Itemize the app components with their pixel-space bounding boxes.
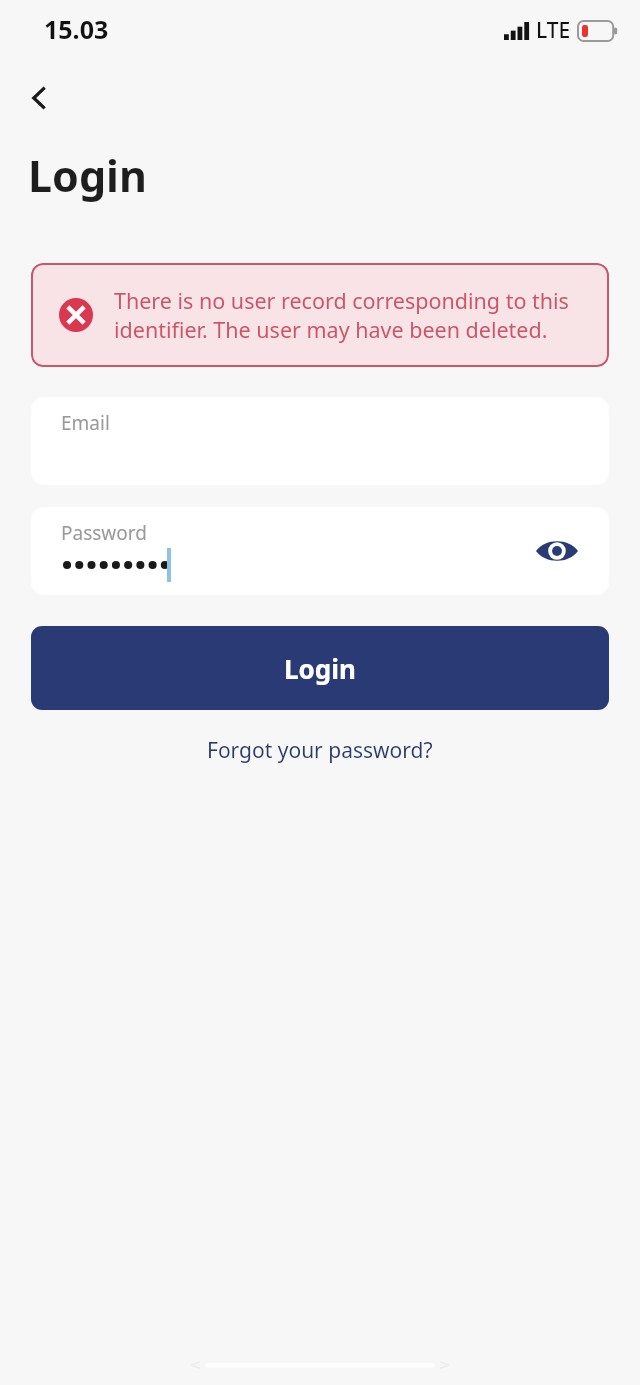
staticText: There is no user record corresponding to… — [114, 286, 591, 344]
button[interactable]: Login — [31, 626, 609, 710]
staticText: Forgot your password? — [207, 736, 433, 765]
button[interactable]: Forgot your password? — [197, 730, 443, 771]
staticText: 15.03 — [44, 12, 109, 46]
button[interactable]: Password — [31, 507, 609, 595]
button[interactable]: There is no user record corresponding to… — [31, 263, 609, 367]
staticText: Login — [28, 146, 147, 205]
button[interactable]: Email — [31, 397, 609, 485]
button[interactable]: Back — [14, 72, 66, 124]
staticText: Email — [61, 410, 110, 436]
staticText: LTE — [536, 16, 571, 45]
button[interactable]: Show password — [533, 527, 581, 575]
staticText: Login — [284, 651, 356, 686]
staticText: Password — [61, 520, 147, 546]
